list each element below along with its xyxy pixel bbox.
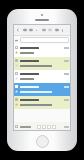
button[interactable]: Select all bbox=[15, 125, 18, 128]
button[interactable]: Page 2 bbox=[42, 125, 46, 129]
button[interactable] bbox=[13, 96, 71, 109]
button[interactable] bbox=[13, 57, 71, 70]
button[interactable]: Reply bbox=[22, 26, 27, 34]
button[interactable]: Page 3 bbox=[47, 125, 51, 129]
button[interactable]: Back bbox=[15, 26, 20, 34]
button[interactable] bbox=[13, 70, 71, 83]
button[interactable]: Home bbox=[36, 135, 49, 148]
button[interactable] bbox=[13, 44, 71, 57]
button[interactable]: Archive bbox=[47, 26, 52, 34]
button[interactable]: Print bbox=[54, 26, 59, 34]
button[interactable]: Delete bbox=[41, 26, 46, 34]
button[interactable] bbox=[13, 83, 71, 96]
button[interactable]: More bbox=[60, 26, 65, 34]
button[interactable]: Forward bbox=[28, 26, 33, 34]
button[interactable]: Search bbox=[20, 37, 69, 43]
button[interactable]: Page 1 bbox=[37, 125, 41, 129]
button[interactable]: Page 4 bbox=[52, 125, 56, 129]
button[interactable]: Move bbox=[34, 26, 39, 34]
